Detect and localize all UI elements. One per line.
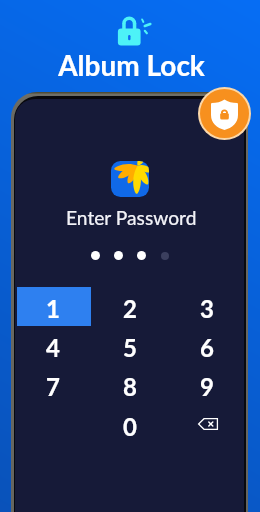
button[interactable]: 1 bbox=[16, 287, 93, 326]
staticText: 5 bbox=[123, 333, 137, 362]
button[interactable]: 2 bbox=[93, 287, 170, 326]
button[interactable]: 9 bbox=[170, 365, 244, 404]
button[interactable]: 7 bbox=[16, 365, 93, 404]
staticText: 0 bbox=[123, 412, 137, 441]
staticText: 2 bbox=[123, 294, 137, 323]
button[interactable]: 5 bbox=[93, 326, 170, 365]
button[interactable]: 3 bbox=[170, 287, 244, 326]
staticText: 1 bbox=[46, 294, 60, 323]
button[interactable]: Security shield bbox=[200, 89, 249, 138]
button[interactable]: 6 bbox=[170, 326, 244, 365]
other: Backspace bbox=[170, 405, 244, 444]
staticText: Enter Password bbox=[66, 206, 197, 229]
staticText: 8 bbox=[123, 372, 137, 401]
staticText: 3 bbox=[200, 294, 214, 323]
button[interactable]: 4 bbox=[16, 326, 93, 365]
button[interactable]: Backspace bbox=[170, 405, 244, 444]
staticText: Album Lock bbox=[58, 48, 205, 82]
staticText: 9 bbox=[200, 372, 214, 401]
staticText: 4 bbox=[46, 333, 60, 362]
button[interactable]: 8 bbox=[93, 365, 170, 404]
button[interactable]: 0 bbox=[93, 405, 170, 444]
staticText: 6 bbox=[200, 333, 214, 362]
staticText: 7 bbox=[46, 372, 60, 401]
